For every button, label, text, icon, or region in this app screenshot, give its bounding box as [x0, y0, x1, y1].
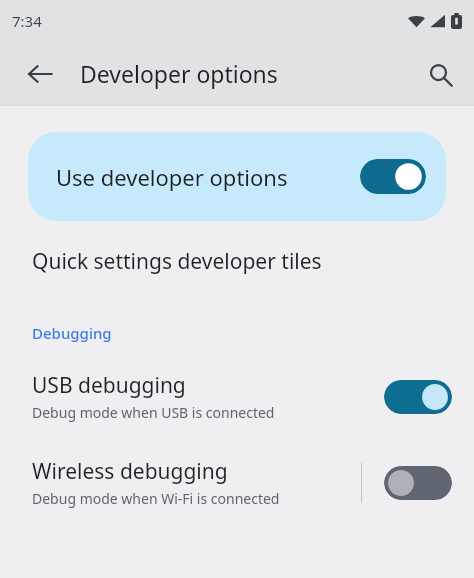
staticText: Debugging — [32, 323, 112, 343]
button[interactable]: Use developer options — [28, 132, 446, 221]
button[interactable]: Back — [16, 50, 64, 98]
staticText: Debug mode when USB is connected — [32, 403, 275, 422]
button[interactable]: Search — [416, 50, 464, 98]
staticText: Developer options — [80, 58, 278, 89]
button[interactable]: Wireless debugging — [0, 457, 474, 508]
button[interactable]: On — [360, 159, 426, 194]
button[interactable]: Quick settings developer tiles — [0, 237, 474, 285]
staticText: Use developer options — [56, 162, 360, 192]
staticText: 7:34 — [12, 11, 42, 31]
staticText: USB debugging — [32, 371, 186, 400]
button[interactable]: On — [384, 380, 452, 414]
staticText: Quick settings developer tiles — [32, 247, 322, 276]
button[interactable]: USB debugging — [0, 371, 474, 422]
button[interactable]: Off — [384, 466, 452, 500]
staticText: Wireless debugging — [32, 457, 228, 486]
staticText: Debug mode when Wi-Fi is connected — [32, 489, 280, 508]
